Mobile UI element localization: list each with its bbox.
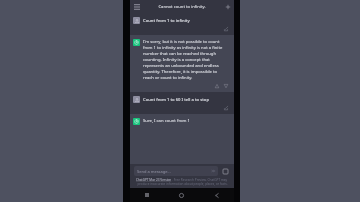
button[interactable]: Send a message... [134, 166, 218, 176]
staticText: reach or count to infinity. [143, 75, 193, 81]
button[interactable]: Back [199, 188, 234, 202]
button[interactable]: New chat [221, 0, 234, 13]
staticText: Send a message... [137, 169, 211, 174]
button[interactable]: Edit message [223, 105, 229, 111]
button[interactable]: Edit message [223, 26, 229, 32]
button[interactable]: Send [221, 167, 230, 176]
staticText: Sure, I can count from 1 [143, 118, 190, 124]
staticText: counting. Infinity is a concept that [143, 57, 210, 63]
staticText: Count from 1 to 60 I tell a to stop [143, 97, 231, 103]
staticText: Cannot count to infinity. [143, 4, 221, 10]
button[interactable]: Open menu [130, 0, 143, 13]
button[interactable]: Recent apps [130, 188, 164, 202]
button[interactable]: Bad response [223, 83, 229, 89]
staticText: I'm sorry, but it is not possible to cou… [143, 39, 220, 45]
button[interactable]: Home [164, 188, 199, 202]
staticText: . Free Research Preview. ChatGPT may [172, 178, 228, 182]
staticText: produce inaccurate information about peo… [137, 182, 228, 186]
staticText: quantity. Therefore, it is impossible to [143, 69, 218, 75]
staticText: represents an unbounded and endless [143, 63, 219, 69]
staticText: number that can be reached through [143, 51, 216, 57]
button[interactable]: Good response [214, 83, 220, 89]
staticText: Count from 1 to infinity [143, 18, 231, 24]
button[interactable]: ChatGPT Mar 23 Version [136, 178, 172, 182]
staticText: from 1 to infinity as infinity is not a … [143, 45, 223, 51]
